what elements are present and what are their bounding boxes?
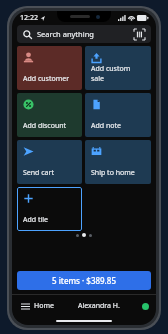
staticText: Ship to home (91, 168, 135, 178)
button[interactable]: Add tile (17, 187, 82, 231)
staticText: Home (34, 301, 54, 311)
staticText: 12:22 (20, 13, 38, 23)
button[interactable]: 5 items · $389.85 (17, 271, 151, 290)
button[interactable]: Send cart (17, 140, 82, 184)
button[interactable]: Online status (142, 303, 149, 310)
staticText: 5 items · $389.85 (52, 275, 116, 286)
staticText: Add tile (23, 215, 48, 225)
button[interactable]: Add discount (17, 93, 82, 137)
button[interactable]: Scan barcode (134, 29, 145, 40)
staticText: Send cart (23, 168, 54, 178)
staticText: Add custom sale (91, 64, 145, 84)
button[interactable]: Add customer (17, 46, 82, 90)
staticText: Add customer (23, 74, 70, 84)
button[interactable]: Add custom sale (85, 46, 151, 90)
staticText: Add discount (23, 121, 67, 131)
staticText: Add note (91, 121, 121, 131)
button[interactable]: Add note (85, 93, 151, 137)
button[interactable]: Home (19, 299, 56, 313)
button[interactable]: Alexandra H. (78, 301, 120, 311)
button[interactable]: Search anything (17, 25, 151, 43)
button[interactable]: Ship to home (85, 140, 151, 184)
staticText: Search anything (37, 29, 94, 39)
